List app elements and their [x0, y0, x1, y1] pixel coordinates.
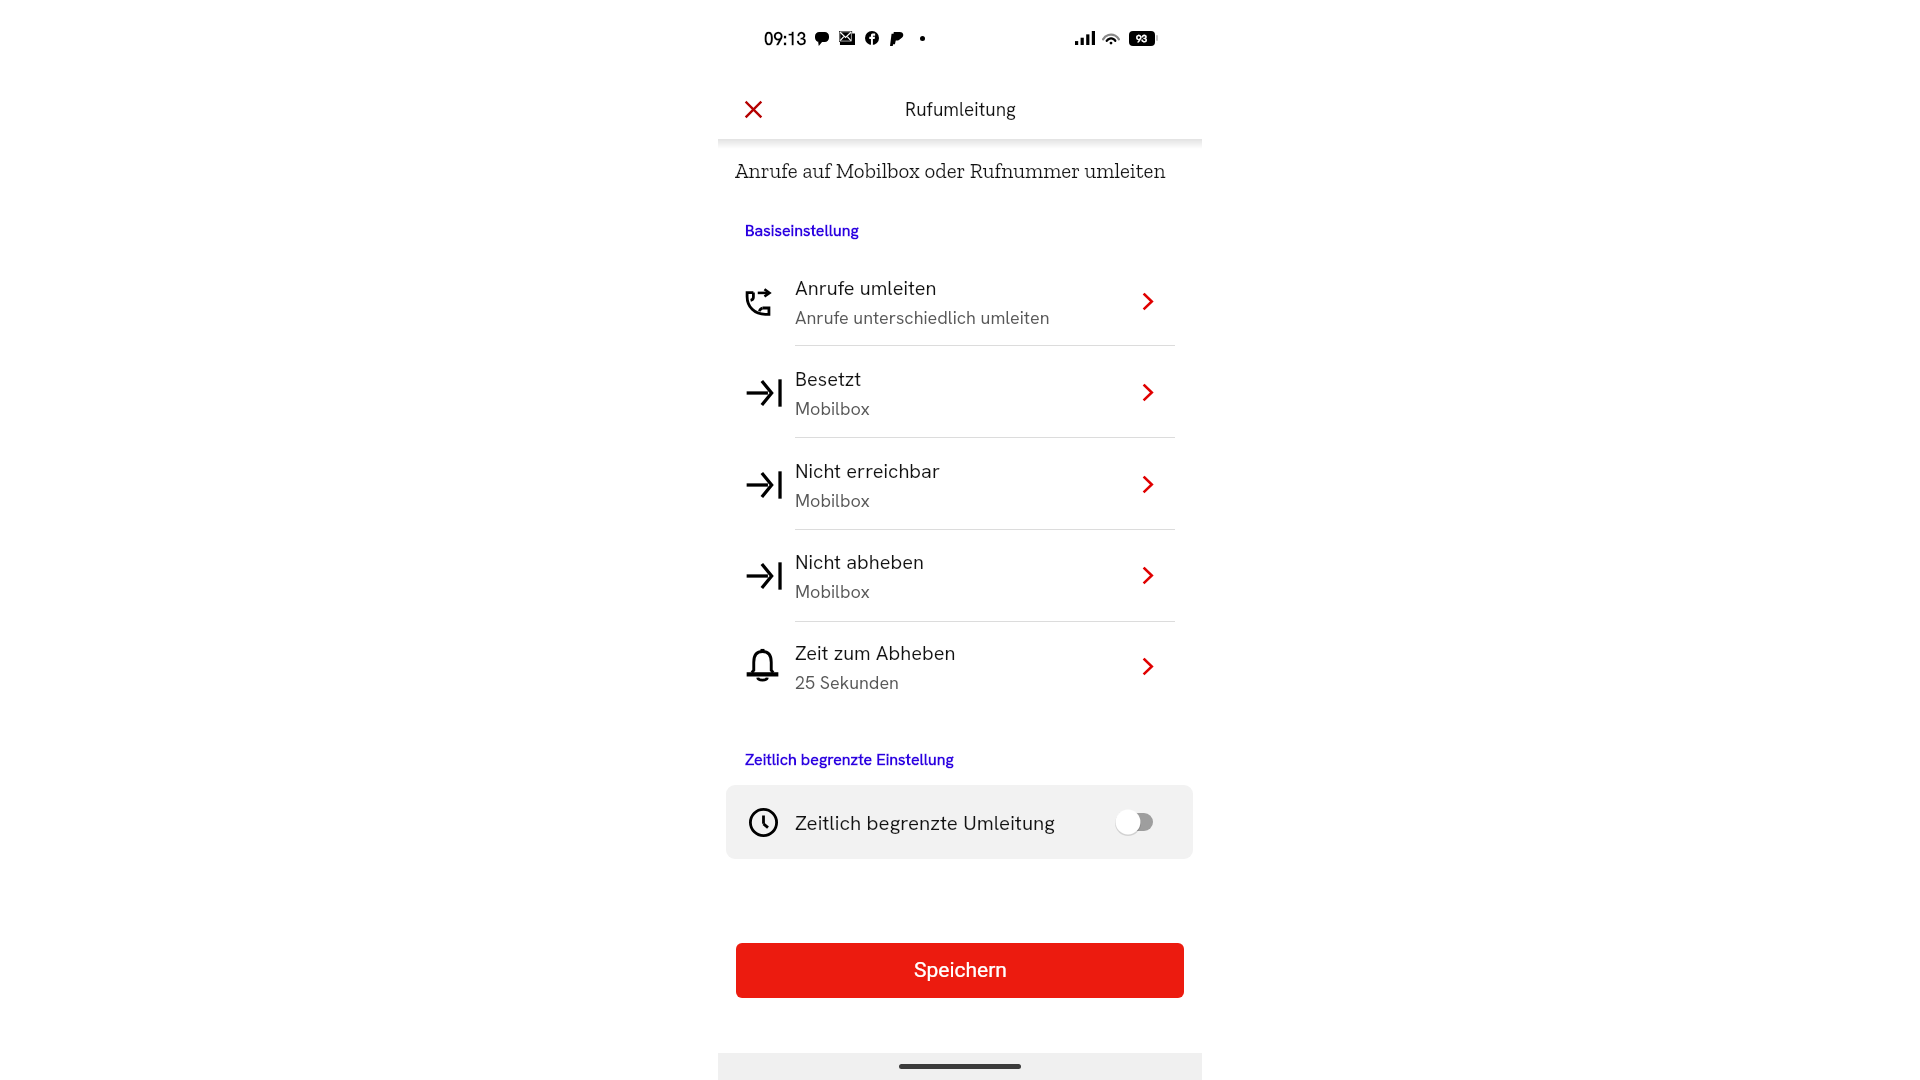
staticText: Anrufe unterschiedlich umleiten: [795, 306, 1050, 329]
staticText: Speichern: [914, 958, 1007, 983]
button[interactable]: Nicht abheben: [718, 530, 1202, 621]
staticText: 93: [1136, 32, 1148, 45]
staticText: 25 Sekunden: [795, 671, 899, 694]
staticText: Zeit zum Abheben: [795, 640, 956, 666]
button[interactable]: Zeitlich begrenzte Umleitung: [726, 785, 1193, 859]
staticText: 09:13: [764, 28, 807, 48]
button[interactable]: Nicht erreichbar: [718, 439, 1202, 530]
staticText: Besetzt: [795, 366, 862, 392]
staticText: Mobilbox: [795, 397, 870, 420]
button[interactable]: Anrufe umleiten: [718, 256, 1202, 347]
staticText: Basiseinstellung: [745, 220, 859, 241]
staticText: Rufumleitung: [905, 97, 1016, 122]
staticText: Mobilbox: [795, 580, 870, 603]
button[interactable]: Speichern: [736, 943, 1184, 998]
staticText: Zeitlich begrenzte Einstellung: [745, 749, 954, 770]
staticText: Anrufe auf Mobilbox oder Rufnummer umlei…: [735, 158, 1166, 183]
staticText: Mobilbox: [795, 489, 870, 512]
button[interactable]: Schließen: [736, 92, 771, 127]
staticText: Anrufe umleiten: [795, 275, 937, 301]
button[interactable]: Besetzt: [718, 347, 1202, 438]
staticText: Nicht erreichbar: [795, 458, 941, 484]
staticText: Zeitlich begrenzte Umleitung: [795, 809, 1115, 836]
button[interactable]: Zeit zum Abheben: [718, 621, 1202, 712]
staticText: Nicht abheben: [795, 549, 924, 575]
